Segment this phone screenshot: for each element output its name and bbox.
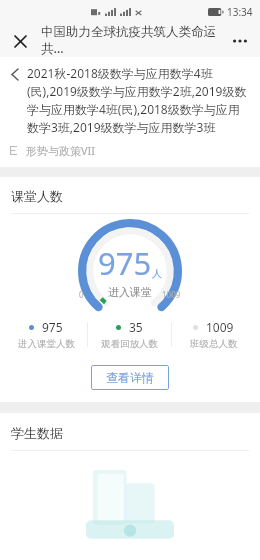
staticText: 课堂人数 [11, 188, 63, 204]
staticText: 975 [42, 319, 63, 335]
staticText: 13:34 [227, 5, 253, 19]
staticText: 975 [98, 242, 152, 284]
staticText: 人 [152, 267, 162, 280]
staticText: 班级总人数 [190, 338, 238, 350]
button[interactable]: Close [9, 30, 31, 52]
button[interactable]: 查看详情 [91, 365, 169, 390]
staticText: 35 [129, 319, 143, 335]
staticText: 进入课堂人数 [18, 338, 75, 350]
staticText: 1009 [206, 319, 234, 335]
staticText: 观看回放人数 [101, 338, 158, 350]
staticText: 查看详情 [106, 370, 154, 385]
button[interactable]: 35 [88, 319, 171, 350]
staticText: 1009 [162, 289, 181, 300]
button[interactable]: More options [229, 30, 251, 52]
staticText: 0 [79, 289, 84, 300]
button[interactable]: 2021秋-2018级数学与应用数学4班(民),2019级数学与应用数学2班,2… [0, 57, 260, 140]
staticText: 形势与政策VII [26, 143, 96, 158]
button[interactable]: 1009 [172, 319, 255, 350]
button[interactable]: 975 [5, 319, 87, 350]
staticText: 2021秋-2018级数学与应用数学4班(民),2019级数学与应用数学2班,2… [27, 65, 249, 135]
staticText: 中国助力全球抗疫共筑人类命运共… [41, 24, 229, 57]
staticText: 进入课堂 [108, 285, 152, 299]
staticText: 学生数据 [11, 425, 63, 441]
